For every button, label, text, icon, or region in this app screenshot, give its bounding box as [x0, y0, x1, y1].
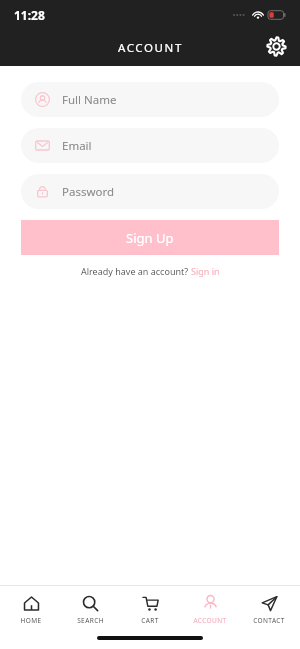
- button[interactable]: Full Name: [21, 82, 279, 117]
- staticText: Sign Up: [126, 229, 174, 247]
- staticText: SEARCH: [77, 616, 104, 625]
- staticText: ACCOUNT: [118, 40, 183, 56]
- staticText: Already have an account?: [81, 265, 191, 277]
- staticText: CART: [141, 616, 159, 625]
- button[interactable]: HOME: [2, 593, 60, 627]
- button[interactable]: SEARCH: [61, 593, 119, 627]
- button[interactable]: ACCOUNT: [181, 593, 239, 627]
- staticText: ACCOUNT: [193, 616, 227, 625]
- staticText: Email: [62, 138, 92, 154]
- staticText: CONTACT: [253, 616, 285, 625]
- staticText: Sign in: [191, 265, 220, 277]
- button[interactable]: Sign Up: [21, 220, 279, 255]
- staticText: HOME: [20, 616, 42, 625]
- button[interactable]: Settings: [258, 28, 294, 64]
- staticText: 11:28: [14, 7, 45, 23]
- button[interactable]: Password: [21, 174, 279, 209]
- button[interactable]: CART: [121, 593, 179, 627]
- button[interactable]: Sign in: [191, 265, 220, 277]
- staticText: Full Name: [62, 92, 117, 108]
- button[interactable]: Email: [21, 128, 279, 163]
- button[interactable]: CONTACT: [240, 593, 298, 627]
- staticText: Password: [62, 184, 115, 200]
